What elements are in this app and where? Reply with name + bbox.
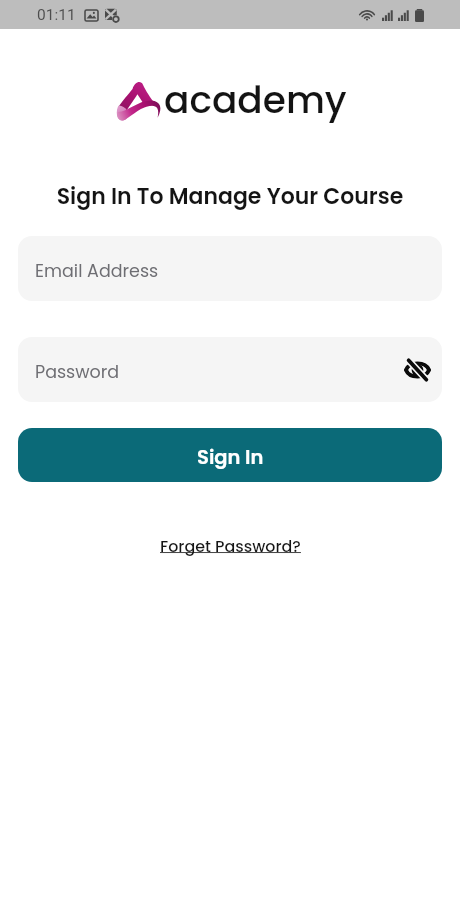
- staticText: Sign In To Manage Your Course: [0, 181, 460, 212]
- button[interactable]: Password: [18, 337, 442, 402]
- button[interactable]: Sign In: [18, 428, 442, 482]
- button[interactable]: Forget Password?: [150, 529, 311, 563]
- staticText: 01:11: [37, 6, 76, 24]
- staticText: Sign In: [197, 444, 264, 471]
- button[interactable]: Email Address: [18, 236, 442, 301]
- staticText: Password: [35, 360, 120, 385]
- staticText: academy: [164, 74, 347, 127]
- button[interactable]: Show password: [400, 353, 434, 387]
- staticText: Forget Password?: [160, 535, 301, 557]
- staticText: Email Address: [35, 259, 159, 284]
